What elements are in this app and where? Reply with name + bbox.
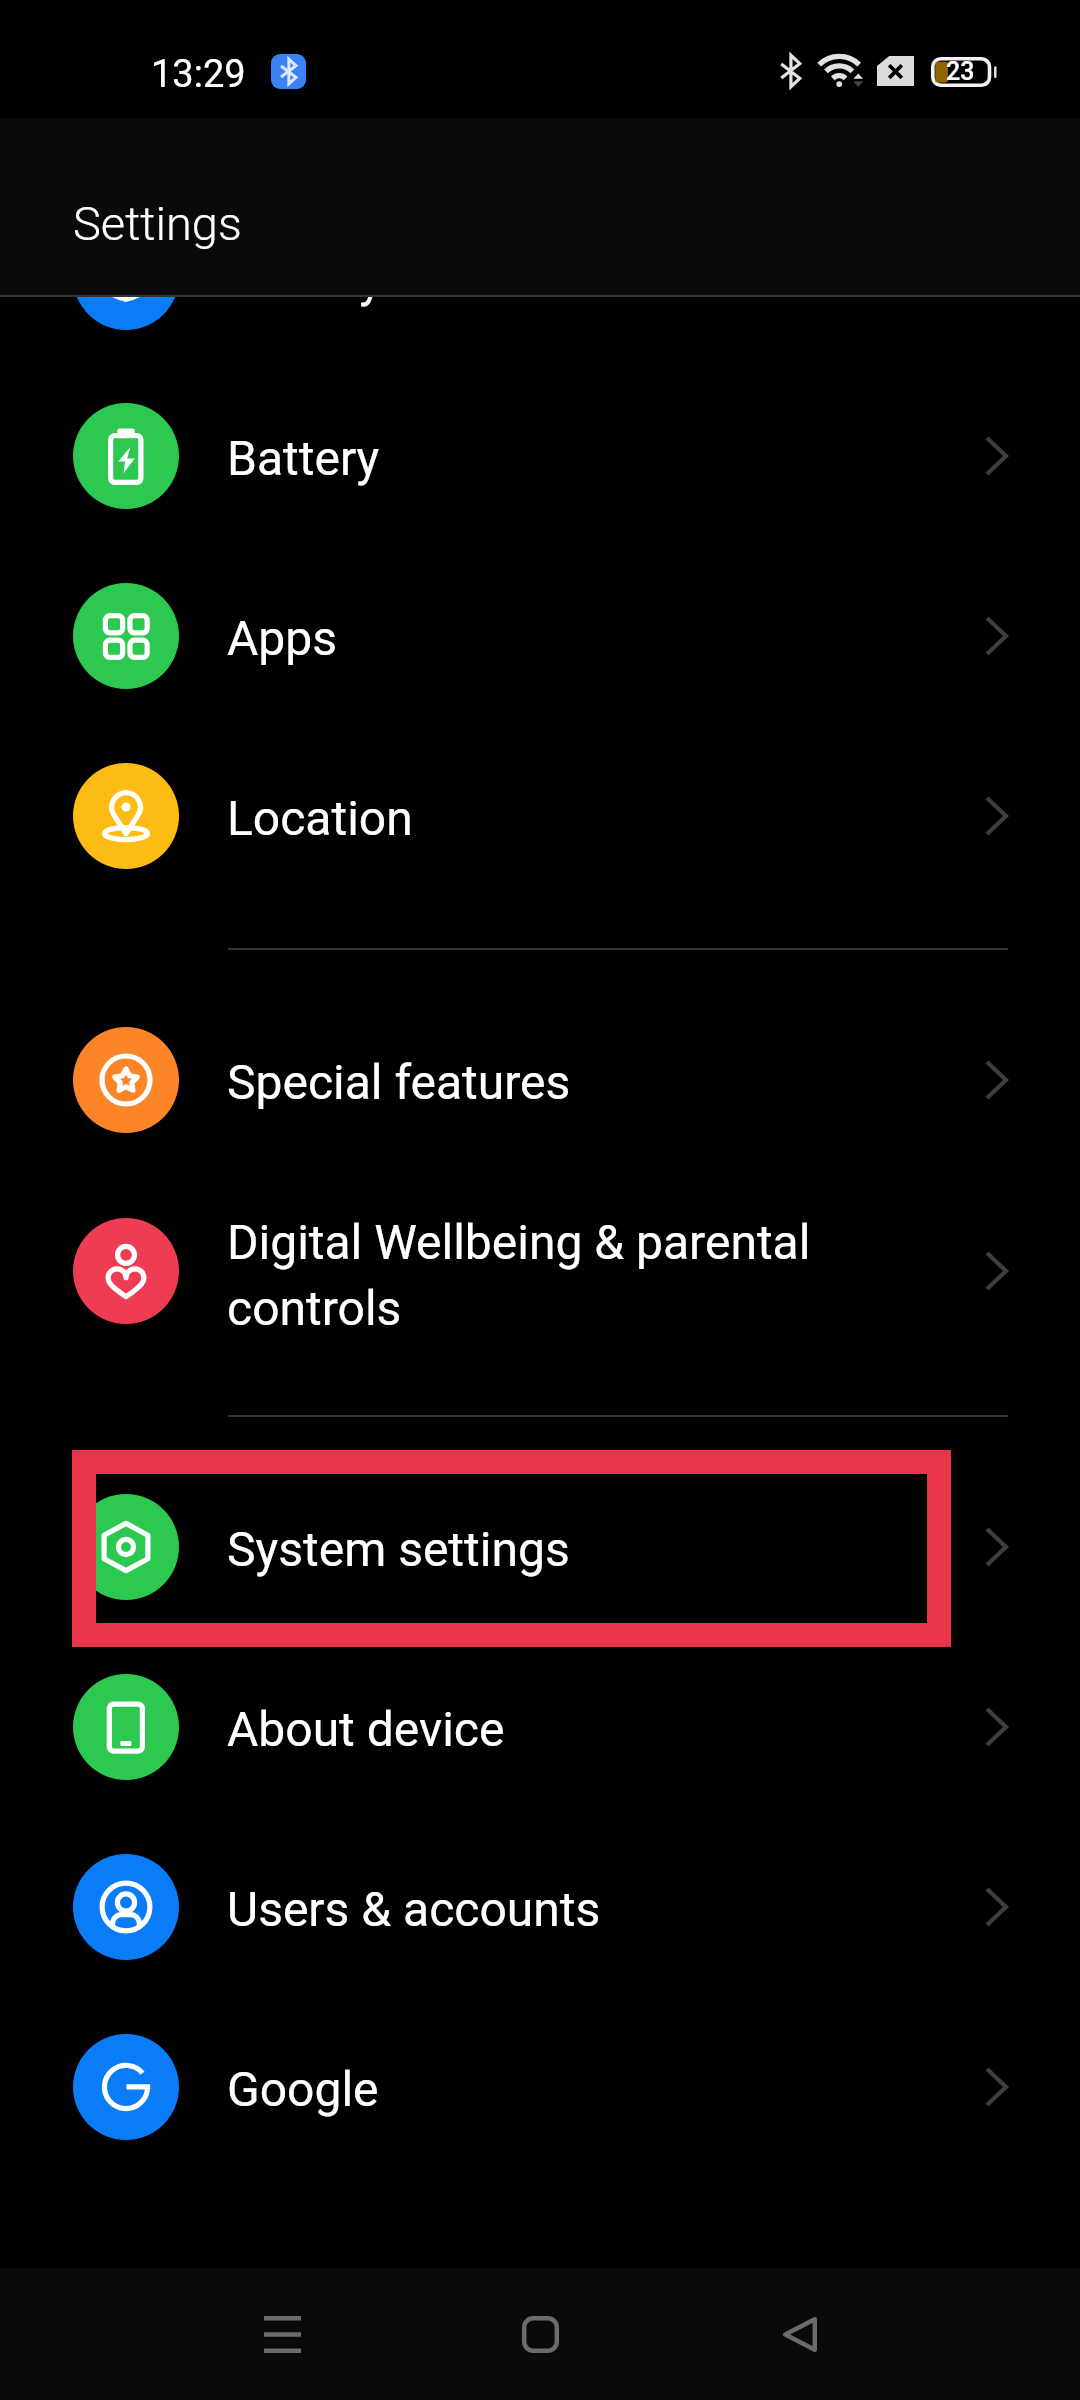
staticText: Apps — [227, 610, 337, 666]
staticText: Location — [227, 790, 413, 846]
button[interactable]: Apps — [0, 546, 1080, 726]
staticText: About device — [227, 1701, 505, 1757]
staticText: Battery — [227, 430, 380, 486]
staticText: 23 — [946, 57, 975, 86]
staticText: Google — [227, 2061, 379, 2117]
button[interactable]: Users & accounts — [0, 1817, 1080, 1997]
button[interactable]: Home — [480, 2274, 600, 2394]
button[interactable]: About device — [0, 1637, 1080, 1817]
button[interactable]: Special features — [0, 990, 1080, 1170]
button[interactable]: Privacy — [0, 297, 1080, 367]
button[interactable]: System settings — [0, 1457, 1080, 1637]
button[interactable]: Recent apps — [222, 2274, 342, 2394]
staticText: 13:29 — [151, 52, 246, 97]
button[interactable]: Back — [740, 2274, 860, 2394]
staticText: System settings — [227, 1521, 570, 1577]
button[interactable]: Battery — [0, 366, 1080, 546]
button[interactable]: Location — [0, 726, 1080, 906]
staticText: Privacy — [227, 297, 383, 307]
staticText: Special features — [227, 1054, 571, 1110]
staticText: Digital Wellbeing & parental controls — [227, 1214, 852, 1337]
staticText: Users & accounts — [227, 1881, 601, 1937]
button[interactable]: Google — [0, 1997, 1080, 2177]
button[interactable]: Digital Wellbeing & parental controls — [0, 1181, 1080, 1361]
staticText: Settings — [73, 196, 242, 251]
